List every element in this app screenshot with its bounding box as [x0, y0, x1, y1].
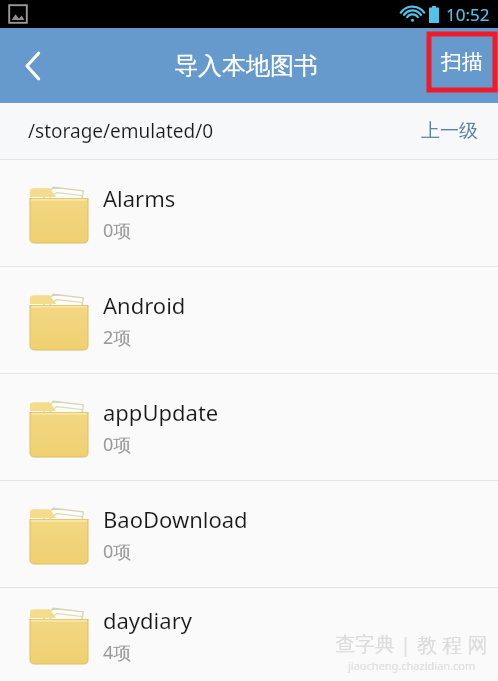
staticText: 教 程 网: [417, 631, 488, 658]
staticText: 0项: [103, 432, 132, 457]
staticText: 4项: [103, 640, 132, 665]
button[interactable]: daydiary: [0, 588, 498, 681]
button[interactable]: BaoDownload: [0, 481, 498, 587]
button[interactable]: Android: [0, 267, 498, 373]
staticText: 0项: [103, 539, 132, 564]
button[interactable]: 扫描: [429, 34, 495, 90]
button[interactable]: appUpdate: [0, 374, 498, 480]
staticText: appUpdate: [103, 397, 219, 427]
staticText: 2项: [103, 325, 132, 350]
button[interactable]: Alarms: [0, 160, 498, 266]
staticText: 扫描: [441, 49, 483, 75]
staticText: jiaocheng.chazidian.com: [348, 658, 476, 673]
button[interactable]: Back: [0, 28, 66, 103]
staticText: Alarms: [103, 183, 176, 213]
staticText: 上一级: [421, 119, 478, 143]
staticText: 0项: [103, 218, 132, 243]
button[interactable]: 上一级: [401, 103, 498, 159]
staticText: 查字典: [335, 632, 395, 657]
staticText: 导入本地图书: [174, 51, 318, 81]
staticText: Android: [103, 290, 186, 320]
staticText: BaoDownload: [103, 504, 248, 534]
staticText: 10:52: [446, 3, 490, 26]
staticText: daydiary: [103, 605, 192, 635]
staticText: |: [400, 631, 412, 658]
staticText: /storage/emulated/0: [28, 118, 214, 144]
